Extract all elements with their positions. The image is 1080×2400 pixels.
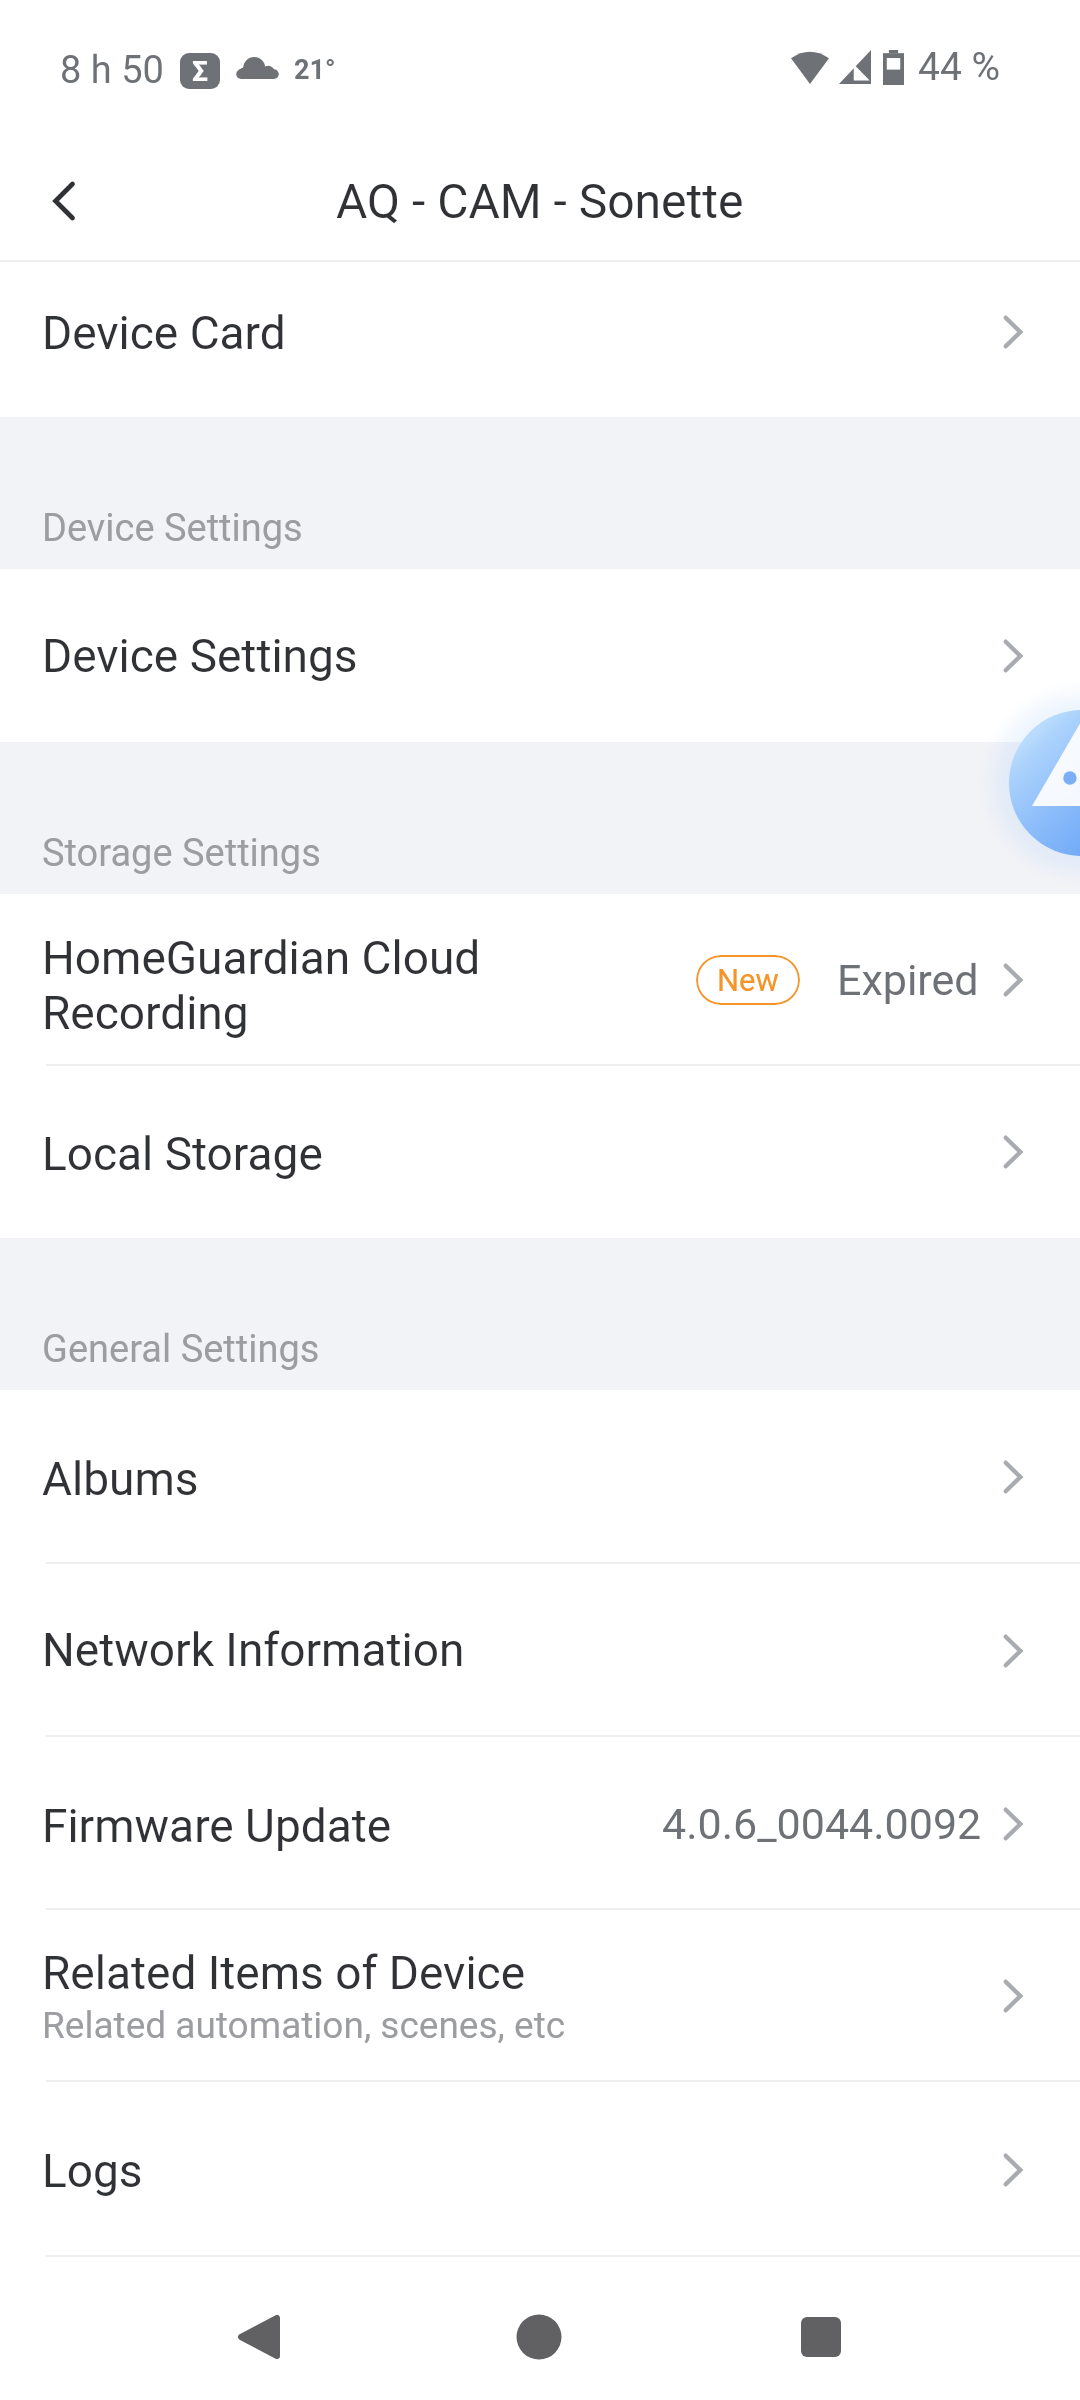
staticText: Device Settings <box>42 506 303 551</box>
staticText: New <box>717 962 779 998</box>
staticText: Logs <box>42 2144 143 2198</box>
staticText: Firmware Update <box>42 1799 392 1853</box>
button[interactable]: Network Information <box>0 1564 1080 1737</box>
button[interactable]: Logs <box>0 2082 1080 2257</box>
staticText: Related automation, scenes, etc <box>42 2004 566 2047</box>
button[interactable]: Assistant <box>955 655 1080 915</box>
staticText: Device Card <box>42 306 286 360</box>
staticText: HomeGuardian Cloud Recording <box>42 931 481 1040</box>
staticText: Storage Settings <box>42 831 321 876</box>
staticText: Expired <box>837 955 979 1005</box>
staticText: Network Information <box>42 1623 465 1677</box>
staticText: Device Settings <box>42 629 358 683</box>
staticText: 4.0.6_0044.0092 <box>662 1799 982 1849</box>
staticText: Local Storage <box>42 1127 323 1181</box>
button[interactable]: Device Settings <box>0 569 1080 742</box>
staticText: 44 % <box>918 44 1001 90</box>
button[interactable]: Firmware Update <box>0 1737 1080 1910</box>
button[interactable]: Related Items of Device <box>0 1910 1080 2082</box>
button[interactable]: Albums <box>0 1390 1080 1564</box>
staticText: Albums <box>42 1452 199 1506</box>
button[interactable]: Back <box>0 146 110 256</box>
staticText: 8 h 50 <box>60 48 164 93</box>
staticText: Related Items of Device <box>42 1946 526 2000</box>
button[interactable]: Device Card <box>0 262 1080 417</box>
staticText: General Settings <box>42 1327 320 1372</box>
button[interactable]: Home <box>494 2292 584 2382</box>
button[interactable]: Local Storage <box>0 1066 1080 1238</box>
button[interactable]: Recent apps <box>776 2292 866 2382</box>
button[interactable]: Back <box>214 2292 304 2382</box>
staticText: AQ - CAM - Sonette <box>336 173 744 229</box>
staticText: Σ <box>192 55 208 88</box>
button[interactable]: HomeGuardian Cloud Recording <box>0 894 1080 1066</box>
staticText: 21° <box>294 54 336 86</box>
